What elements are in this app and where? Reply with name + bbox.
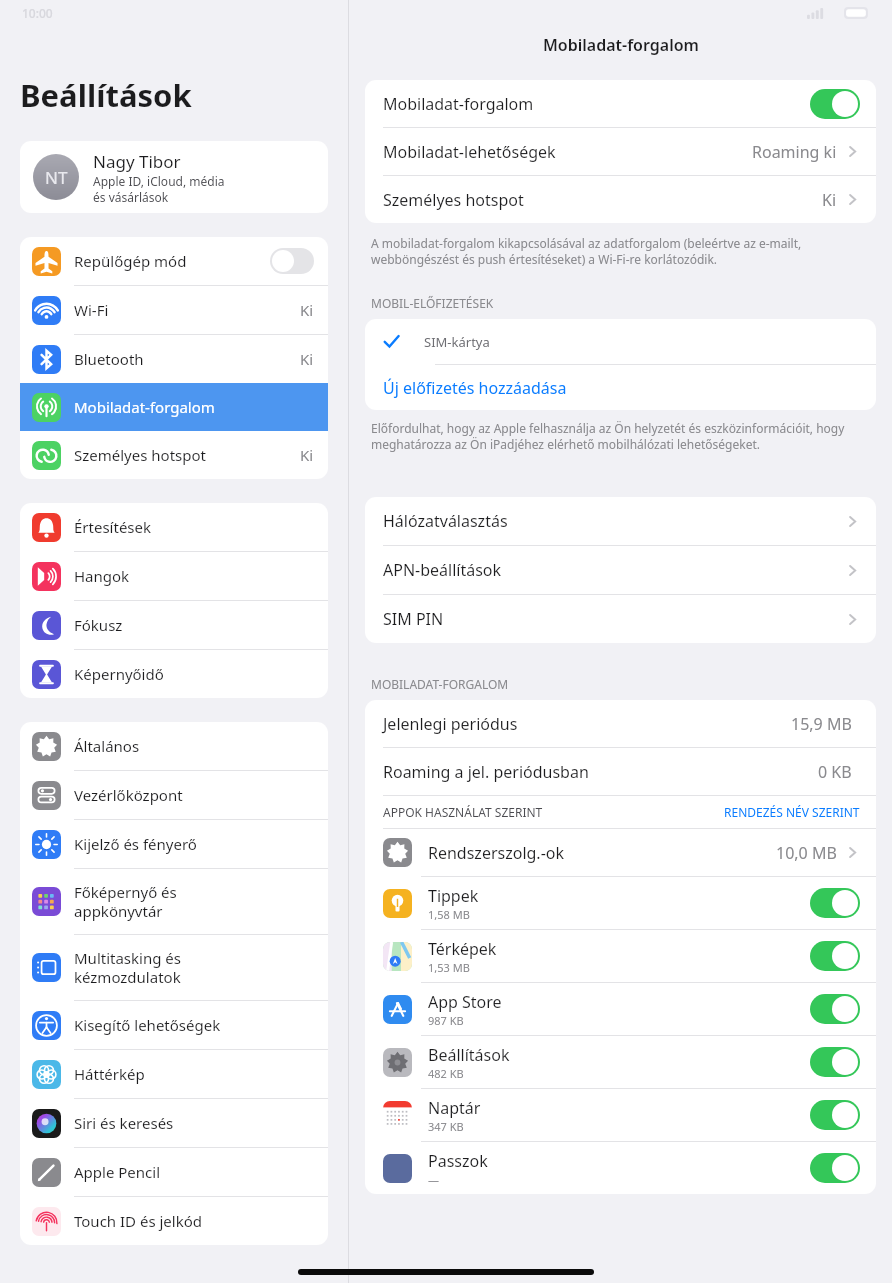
button[interactable]: Fókusz: [20, 601, 328, 649]
staticText: 10:00: [22, 5, 53, 21]
button[interactable]: SIM PIN: [365, 595, 876, 643]
staticText: MOBIL-ELŐFIZETÉSEK: [371, 295, 494, 311]
staticText: Mobiladat-forgalom: [74, 397, 314, 417]
staticText: Passzok: [428, 1150, 488, 1172]
button[interactable]: Személyes hotspot: [365, 176, 876, 223]
button[interactable]: Mobiladat-forgalom: [365, 80, 876, 127]
staticText: Ki: [300, 300, 314, 320]
button[interactable]: RENDEZÉS NÉV SZERINT: [724, 804, 860, 820]
button[interactable]: [810, 89, 860, 119]
staticText: Előfordulhat, hogy az Apple felhasználja…: [371, 420, 870, 453]
staticText: Képernyőidő: [74, 664, 314, 684]
button[interactable]: Roaming a jel. periódusban: [365, 748, 876, 795]
staticText: SIM-kártya: [424, 333, 860, 351]
button[interactable]: Vezérlőközpont: [20, 771, 328, 819]
button[interactable]: NT: [20, 141, 328, 213]
staticText: Touch ID és jelkód: [74, 1211, 314, 1231]
button[interactable]: Passzok: [365, 1142, 876, 1194]
staticText: Rendszerszolg.-ok: [428, 842, 565, 864]
staticText: Térképek: [428, 938, 497, 960]
button[interactable]: Kijelző és fényerő: [20, 820, 328, 868]
staticText: Általános: [74, 736, 314, 756]
staticText: 987 KB: [428, 1013, 464, 1028]
staticText: Értesítések: [74, 517, 314, 537]
button[interactable]: Naptár: [365, 1089, 876, 1141]
button[interactable]: Általános: [20, 722, 328, 770]
staticText: App Store: [428, 991, 502, 1013]
staticText: Vezérlőközpont: [74, 785, 314, 805]
staticText: MOBILADAT-FORGALOM: [371, 676, 509, 692]
staticText: Beállítások: [428, 1044, 510, 1066]
staticText: Személyes hotspot: [74, 445, 300, 465]
staticText: Hangok: [74, 566, 314, 586]
button[interactable]: [810, 994, 860, 1024]
button[interactable]: [810, 1100, 860, 1130]
staticText: Jelenlegi periódus: [383, 713, 791, 735]
staticText: APN-beállítások: [383, 559, 845, 581]
staticText: Mobiladat-forgalom: [543, 34, 699, 56]
button[interactable]: Apple Pencil: [20, 1148, 328, 1196]
staticText: Háttérkép: [74, 1064, 314, 1084]
staticText: Multitasking és kézmozdulatok: [74, 948, 314, 987]
staticText: Mobiladat-forgalom: [383, 93, 810, 115]
button[interactable]: Képernyőidő: [20, 650, 328, 698]
button[interactable]: Beállítások: [365, 1036, 876, 1088]
button[interactable]: Értesítések: [20, 503, 328, 551]
staticText: Ki: [300, 349, 314, 369]
staticText: Új előfizetés hozzáadása: [383, 377, 860, 399]
staticText: RENDEZÉS NÉV SZERINT: [724, 804, 860, 820]
button[interactable]: Hálózatválasztás: [365, 497, 876, 545]
button[interactable]: [810, 941, 860, 971]
button[interactable]: Jelenlegi periódus: [365, 700, 876, 747]
button[interactable]: Személyes hotspot: [20, 431, 328, 479]
staticText: Apple ID, iCloud, média és vásárlások: [93, 173, 225, 205]
staticText: Kisegítő lehetőségek: [74, 1015, 314, 1035]
staticText: Személyes hotspot: [383, 189, 822, 211]
button[interactable]: Tippek: [365, 877, 876, 929]
button[interactable]: Kisegítő lehetőségek: [20, 1001, 328, 1049]
button[interactable]: Mobiladat-forgalom: [20, 383, 328, 431]
staticText: Nagy Tibor: [93, 150, 181, 173]
button[interactable]: Wi-Fi: [20, 286, 328, 334]
staticText: 0 KB: [818, 761, 852, 783]
button[interactable]: Rendszerszolg.-ok: [365, 829, 876, 876]
staticText: Apple Pencil: [74, 1162, 314, 1182]
button[interactable]: Touch ID és jelkód: [20, 1197, 328, 1245]
button[interactable]: SIM-kártya: [365, 319, 876, 364]
staticText: Ki: [300, 445, 314, 465]
button[interactable]: Hangok: [20, 552, 328, 600]
button[interactable]: App Store: [365, 983, 876, 1035]
staticText: 1,58 MB: [428, 907, 470, 922]
button[interactable]: Repülőgép mód: [20, 237, 328, 285]
staticText: —: [428, 1172, 439, 1187]
button[interactable]: Főképernyő és appkönyvtár: [20, 869, 328, 934]
staticText: Siri és keresés: [74, 1113, 314, 1133]
staticText: A mobiladat-forgalom kikapcsolásával az …: [371, 235, 870, 268]
button[interactable]: Siri és keresés: [20, 1099, 328, 1147]
button[interactable]: [810, 1047, 860, 1077]
staticText: Mobiladat-lehetőségek: [383, 141, 752, 163]
button[interactable]: [810, 888, 860, 918]
staticText: APPOK HASZNÁLAT SZERINT: [383, 804, 724, 820]
button[interactable]: Új előfizetés hozzáadása: [365, 365, 876, 410]
button[interactable]: Háttérkép: [20, 1050, 328, 1098]
button[interactable]: APN-beállítások: [365, 546, 876, 594]
staticText: NT: [45, 166, 68, 189]
staticText: 482 KB: [428, 1066, 464, 1081]
staticText: Beállítások: [20, 74, 192, 116]
staticText: Fókusz: [74, 615, 314, 635]
button[interactable]: Multitasking és kézmozdulatok: [20, 935, 328, 1000]
button[interactable]: Mobiladat-lehetőségek: [365, 128, 876, 175]
staticText: Tippek: [428, 885, 479, 907]
staticText: Kijelző és fényerő: [74, 834, 314, 854]
staticText: SIM PIN: [383, 608, 845, 630]
staticText: 10,0 MB: [776, 842, 837, 864]
staticText: Naptár: [428, 1097, 481, 1119]
button[interactable]: [270, 248, 314, 274]
staticText: 347 KB: [428, 1119, 464, 1134]
staticText: Ki: [822, 189, 837, 211]
staticText: Roaming a jel. periódusban: [383, 761, 818, 783]
button[interactable]: Bluetooth: [20, 335, 328, 383]
button[interactable]: Térképek: [365, 930, 876, 982]
button[interactable]: [810, 1153, 860, 1183]
